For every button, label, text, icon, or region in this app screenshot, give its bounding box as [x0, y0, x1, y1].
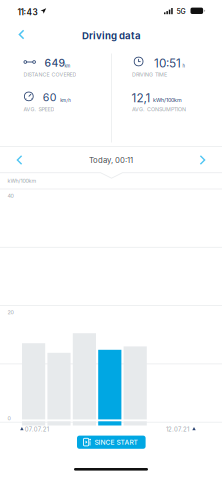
staticText: 07.07.21: [25, 426, 49, 433]
staticText: AVG. CONSUMPTION: [132, 106, 186, 113]
staticText: 20: [8, 309, 14, 315]
staticText: km/h: [60, 98, 71, 103]
button[interactable]: Back: [7, 23, 35, 45]
button[interactable]: Previous period: [3, 147, 35, 172]
staticText: 11:43: [18, 7, 38, 17]
staticText: DRIVING TIME: [132, 71, 167, 78]
button[interactable]: Next period: [186, 147, 218, 172]
staticText: 12,1: [131, 91, 150, 105]
staticText: 649: [44, 57, 65, 69]
staticText: SINCE START: [95, 438, 138, 446]
staticText: 5G: [176, 7, 185, 16]
staticText: 12.07.21: [166, 426, 189, 433]
staticText: h: [183, 63, 186, 69]
staticText: 0: [8, 415, 11, 422]
button[interactable]: SINCE START: [77, 436, 146, 449]
staticText: kWh/100km: [8, 178, 37, 184]
staticText: DISTANCE COVERED: [23, 71, 76, 78]
staticText: AVG. SPEED: [23, 106, 54, 113]
staticText: km: [65, 63, 71, 69]
staticText: Today, 00:11: [89, 156, 133, 165]
staticText: 40: [8, 193, 14, 199]
staticText: 60: [43, 91, 57, 104]
staticText: 10:51: [154, 56, 181, 70]
staticText: kWh/100km: [153, 97, 182, 103]
staticText: Driving data: [82, 30, 141, 42]
